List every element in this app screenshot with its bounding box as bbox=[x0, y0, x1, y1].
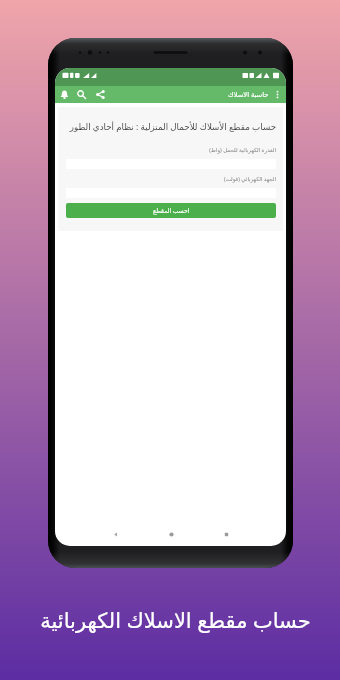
button[interactable]: Search bbox=[75, 88, 88, 101]
staticText: احسب المقطع bbox=[153, 207, 190, 215]
staticText: حساب مقطع الأسلاك للأحمال المنزلية : نظا… bbox=[66, 121, 276, 133]
button[interactable]: More options bbox=[272, 89, 283, 100]
button[interactable]: Notifications bbox=[58, 88, 71, 101]
button[interactable]: Share bbox=[94, 88, 107, 101]
staticText: حاسبة الاسلاك bbox=[228, 90, 269, 99]
staticText: الجهد الكهربائي (فولت) bbox=[66, 175, 276, 182]
button[interactable]: Home bbox=[161, 524, 181, 544]
button[interactable]: احسب المقطع bbox=[66, 203, 276, 218]
button[interactable]: Back bbox=[105, 524, 125, 544]
button[interactable]: Recents bbox=[216, 524, 236, 544]
staticText: القدرة الكهربائية للحمل (واط) bbox=[66, 146, 276, 153]
staticText: حساب مقطع الاسلاك الكهربائية bbox=[40, 606, 311, 635]
